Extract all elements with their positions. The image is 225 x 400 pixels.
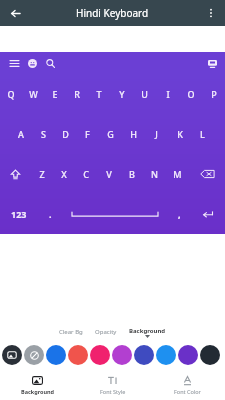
staticText: G [107, 128, 114, 140]
button[interactable]: Backspace [189, 154, 225, 194]
button[interactable]: Color [68, 345, 88, 365]
button[interactable]: Enter [191, 194, 225, 234]
staticText: . [49, 208, 52, 220]
staticText: S [41, 128, 46, 140]
staticText: C [83, 168, 89, 180]
staticText: N [151, 168, 158, 180]
staticText: Opacity [95, 328, 117, 336]
button[interactable]: M [166, 154, 189, 194]
staticText: K [177, 128, 183, 140]
button[interactable]: Z [31, 154, 53, 194]
button[interactable]: 123 [0, 194, 38, 234]
staticText: X [61, 168, 67, 180]
staticText: F [85, 128, 90, 140]
staticText: Q [7, 88, 15, 100]
staticText: Z [39, 168, 45, 180]
button[interactable]: A [10, 114, 32, 154]
button[interactable]: Color [134, 345, 154, 365]
button[interactable]: U [133, 74, 156, 114]
button[interactable]: D [54, 114, 76, 154]
button[interactable]: P [202, 74, 225, 114]
staticText: W [29, 88, 38, 100]
button[interactable]: Y [110, 74, 133, 114]
button[interactable]: . [38, 194, 62, 234]
button[interactable]: R [66, 74, 88, 114]
button[interactable]: X [53, 154, 75, 194]
button[interactable]: No background [24, 345, 44, 365]
button[interactable]: Color [156, 345, 176, 365]
staticText: M [173, 168, 182, 180]
staticText: Background [21, 388, 55, 395]
button[interactable]: Q [0, 74, 22, 114]
button[interactable]: Color [90, 345, 110, 365]
button[interactable]: L [191, 114, 214, 154]
button[interactable]: Font Color [150, 370, 225, 400]
button[interactable]: Pick image [2, 345, 22, 365]
staticText: , [178, 208, 181, 220]
button[interactable]: Clear Bg [59, 328, 83, 336]
staticText: P [211, 88, 217, 100]
staticText: R [74, 88, 80, 100]
button[interactable]: F [76, 114, 99, 154]
button[interactable]: Search [41, 54, 59, 72]
staticText: Clear Bg [59, 328, 83, 336]
staticText: Hindi Keyboard [76, 6, 149, 20]
button[interactable]: Opacity [95, 328, 117, 336]
button[interactable]: K [168, 114, 191, 154]
button[interactable]: B [120, 154, 143, 194]
button[interactable]: Color [112, 345, 132, 365]
staticText: Font Style [100, 388, 126, 395]
button[interactable]: N [143, 154, 166, 194]
button[interactable]: Color [46, 345, 66, 365]
button[interactable]: T [88, 74, 110, 114]
button[interactable]: Themes [204, 55, 220, 71]
button[interactable]: S [32, 114, 54, 154]
staticText: Font Color [174, 388, 201, 395]
button[interactable]: G [99, 114, 122, 154]
button[interactable]: Shift [0, 154, 31, 194]
button[interactable]: C [75, 154, 97, 194]
button[interactable]: W [22, 74, 44, 114]
button[interactable]: V [97, 154, 120, 194]
staticText: I [166, 88, 170, 100]
button[interactable]: Menu [5, 54, 23, 72]
staticText: V [106, 168, 112, 180]
staticText: T [96, 88, 102, 100]
staticText: U [141, 88, 148, 100]
button[interactable]: Color [200, 345, 220, 365]
button[interactable]: Back [4, 2, 26, 24]
staticText: Y [119, 88, 125, 100]
staticText: 123 [11, 208, 27, 220]
button[interactable]: Emoji [23, 54, 41, 72]
button[interactable]: E [44, 74, 66, 114]
staticText: Background [129, 327, 166, 335]
staticText: E [52, 88, 58, 100]
button[interactable]: Font Style [75, 370, 150, 400]
button[interactable]: H [122, 114, 145, 154]
button[interactable]: More options [201, 3, 221, 23]
button[interactable]: , [167, 194, 191, 234]
staticText: H [130, 128, 137, 140]
button[interactable]: J [145, 114, 168, 154]
button[interactable]: Space [62, 194, 167, 234]
staticText: D [62, 128, 69, 140]
staticText: A [18, 128, 24, 140]
staticText: L [200, 128, 205, 140]
button[interactable]: Background [0, 370, 75, 400]
staticText: B [129, 168, 135, 180]
button[interactable]: Background [129, 327, 166, 338]
staticText: J [155, 128, 158, 140]
button[interactable]: Color [178, 345, 198, 365]
button[interactable]: O [179, 74, 202, 114]
button[interactable]: I [156, 74, 179, 114]
staticText: O [187, 88, 195, 100]
